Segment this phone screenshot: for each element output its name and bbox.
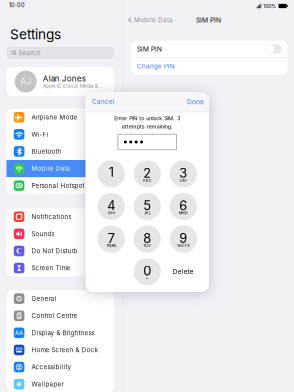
staticText: Home Screen & Dock bbox=[31, 346, 97, 354]
staticText: Delete bbox=[173, 268, 194, 275]
staticText: ABC bbox=[143, 178, 152, 183]
button[interactable]: Bluetooth bbox=[6, 143, 114, 160]
button[interactable]: Notifications bbox=[6, 208, 114, 225]
staticText: 100% bbox=[263, 3, 276, 9]
button[interactable]: 0 bbox=[134, 258, 161, 285]
button[interactable]: Sounds bbox=[6, 225, 114, 242]
button[interactable]: Home Screen & Dock bbox=[6, 341, 114, 358]
staticText: SIM PIN bbox=[196, 16, 221, 24]
staticText: Personal Hotspot bbox=[31, 182, 84, 189]
staticText: Control Centre bbox=[31, 312, 77, 320]
button[interactable]: 2 bbox=[134, 160, 161, 187]
staticText: Airplane Mode bbox=[31, 113, 77, 121]
staticText: MNO bbox=[179, 211, 188, 215]
button[interactable]: Do Not Disturb bbox=[6, 242, 114, 259]
staticText: 7 bbox=[108, 230, 115, 246]
button[interactable]: 9 bbox=[170, 225, 197, 253]
staticText: Done bbox=[187, 98, 204, 106]
staticText: WXYZ bbox=[177, 243, 189, 248]
staticText: Do Not Disturb bbox=[31, 247, 77, 255]
button[interactable]: 6 bbox=[170, 193, 197, 220]
staticText: DEF bbox=[180, 178, 187, 183]
button[interactable]: Airplane Mode bbox=[6, 109, 114, 126]
staticText: 5 bbox=[143, 198, 151, 213]
staticText: Alan Jones bbox=[43, 74, 86, 83]
button[interactable]: Done bbox=[187, 98, 204, 106]
staticText: Accessibility bbox=[31, 363, 71, 371]
button[interactable]: Mobile Data bbox=[6, 160, 114, 177]
button[interactable]: Wallpaper bbox=[6, 376, 114, 392]
staticText: Bluetooth bbox=[31, 148, 61, 155]
button[interactable]: Accessibility bbox=[6, 358, 114, 376]
button[interactable]: Control Centre bbox=[6, 307, 114, 324]
button[interactable]: 8 bbox=[134, 225, 161, 253]
button[interactable]: General bbox=[6, 290, 114, 307]
staticText: Display & Brightness bbox=[31, 329, 94, 337]
staticText: 10:00 bbox=[9, 2, 25, 9]
staticText: Search bbox=[19, 49, 41, 57]
staticText: 1 bbox=[109, 164, 114, 180]
button[interactable]: Delete bbox=[170, 258, 197, 285]
button[interactable]: 1 bbox=[97, 160, 125, 187]
staticText: attempts remaining. bbox=[122, 123, 173, 130]
staticText: 9 bbox=[179, 230, 187, 246]
staticText: JKL bbox=[144, 211, 151, 215]
staticText: + bbox=[146, 276, 149, 280]
staticText: Apple ID, iCloud, Media &… bbox=[43, 83, 102, 89]
staticText: Sounds bbox=[31, 230, 54, 238]
button[interactable]: 3 bbox=[170, 160, 197, 187]
staticText: Change PIN bbox=[137, 62, 175, 70]
staticText: 3 bbox=[179, 165, 187, 181]
staticText: SIM PIN bbox=[137, 45, 162, 53]
staticText: 8 bbox=[143, 230, 151, 246]
button[interactable]: AA bbox=[6, 324, 114, 341]
staticText: GHI bbox=[108, 211, 115, 215]
button[interactable]: Cancel bbox=[92, 98, 115, 106]
staticText: Mobile Data bbox=[134, 16, 173, 24]
staticText: TUV bbox=[143, 243, 151, 248]
button[interactable]: Mobile Data bbox=[127, 13, 173, 26]
staticText: Settings bbox=[10, 26, 61, 43]
staticText: Mobile Data bbox=[31, 165, 70, 172]
button[interactable]: Screen Time bbox=[6, 259, 114, 277]
staticText: 6 bbox=[179, 198, 187, 213]
staticText: Enter PIN to unlock SIM. 3 bbox=[114, 115, 180, 122]
button[interactable]: 4 bbox=[97, 193, 125, 220]
button[interactable]: 7 bbox=[97, 225, 125, 253]
staticText: Cancel bbox=[92, 98, 115, 106]
button[interactable]: AJ bbox=[6, 67, 114, 96]
staticText: AA bbox=[15, 329, 23, 337]
button[interactable]: 5 bbox=[134, 193, 161, 220]
staticText: Wallpaper bbox=[31, 380, 63, 388]
button[interactable]: Change PIN bbox=[137, 62, 175, 70]
staticText: AJ bbox=[20, 76, 31, 87]
button[interactable]: SIM PIN toggle bbox=[265, 44, 281, 54]
staticText: Wi-Fi bbox=[31, 131, 48, 138]
staticText: 2 bbox=[143, 165, 151, 181]
button[interactable]: Personal Hotspot bbox=[6, 177, 114, 194]
staticText: Notifications bbox=[31, 213, 71, 221]
staticText: General bbox=[31, 295, 56, 302]
staticText: Screen Time bbox=[31, 264, 70, 272]
staticText: 0 bbox=[143, 263, 151, 279]
staticText: 4 bbox=[107, 198, 115, 213]
staticText: PQRS bbox=[107, 243, 116, 248]
button[interactable]: Wi-Fi bbox=[6, 126, 114, 143]
